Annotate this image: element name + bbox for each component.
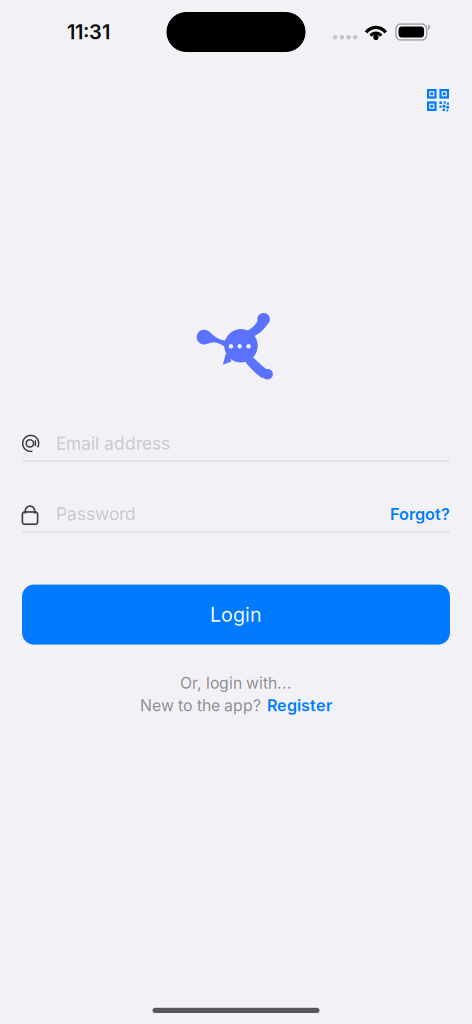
staticText: Register bbox=[267, 696, 332, 715]
staticText: Password bbox=[56, 503, 136, 524]
button[interactable]: Login bbox=[22, 585, 450, 645]
staticText: Or, login with... bbox=[180, 674, 292, 693]
button[interactable]: Forgot? bbox=[390, 504, 450, 524]
staticText: Forgot? bbox=[390, 504, 450, 524]
button[interactable]: Scan QR code bbox=[415, 79, 461, 121]
staticText: New to the app? bbox=[140, 696, 261, 715]
button[interactable]: Register bbox=[267, 696, 332, 715]
staticText: Login bbox=[210, 603, 262, 627]
staticText: Email address bbox=[56, 433, 170, 454]
staticText: 11:31 bbox=[67, 20, 110, 44]
